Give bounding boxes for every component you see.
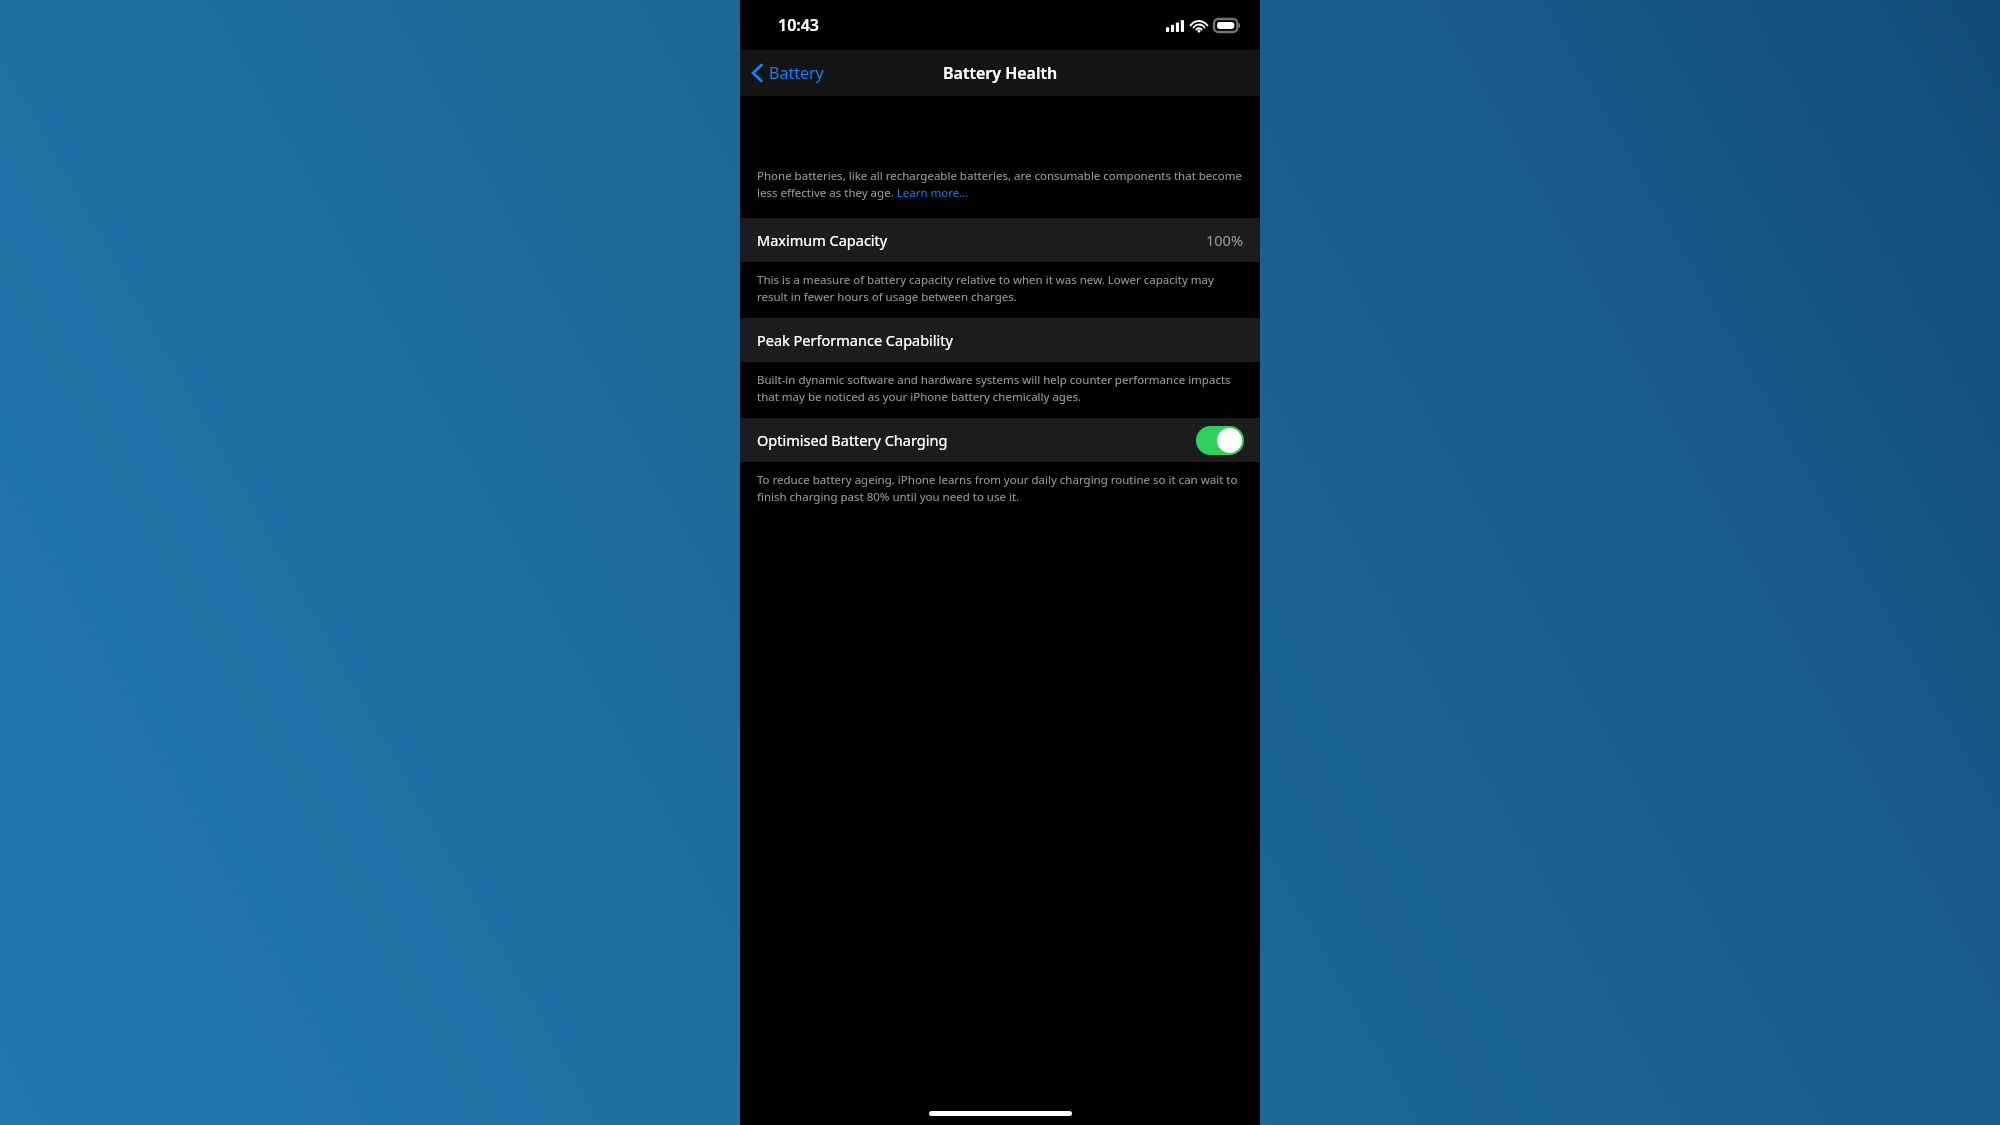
staticText: To reduce battery ageing, iPhone learns …: [757, 472, 1242, 504]
staticText: Maximum Capacity: [757, 230, 888, 250]
staticText: Battery Health: [943, 62, 1058, 84]
button[interactable]: Optimised Battery Charging toggle: [1196, 426, 1244, 455]
staticText: Optimised Battery Charging: [757, 430, 948, 450]
staticText: 10:43: [778, 14, 820, 36]
button[interactable]: Optimised Battery Charging: [740, 418, 1260, 462]
staticText: This is a measure of battery capacity re…: [757, 272, 1242, 304]
button[interactable]: Maximum Capacity: [740, 218, 1260, 262]
staticText: Peak Performance Capability: [757, 330, 953, 350]
staticText: Built-in dynamic software and hardware s…: [757, 372, 1242, 404]
button[interactable]: Battery: [740, 56, 834, 90]
staticText: 100%: [1206, 230, 1243, 250]
staticText: Battery: [769, 62, 824, 84]
button[interactable]: Peak Performance Capability: [740, 318, 1260, 362]
staticText: Phone batteries, like all rechargeable b…: [757, 168, 1245, 200]
